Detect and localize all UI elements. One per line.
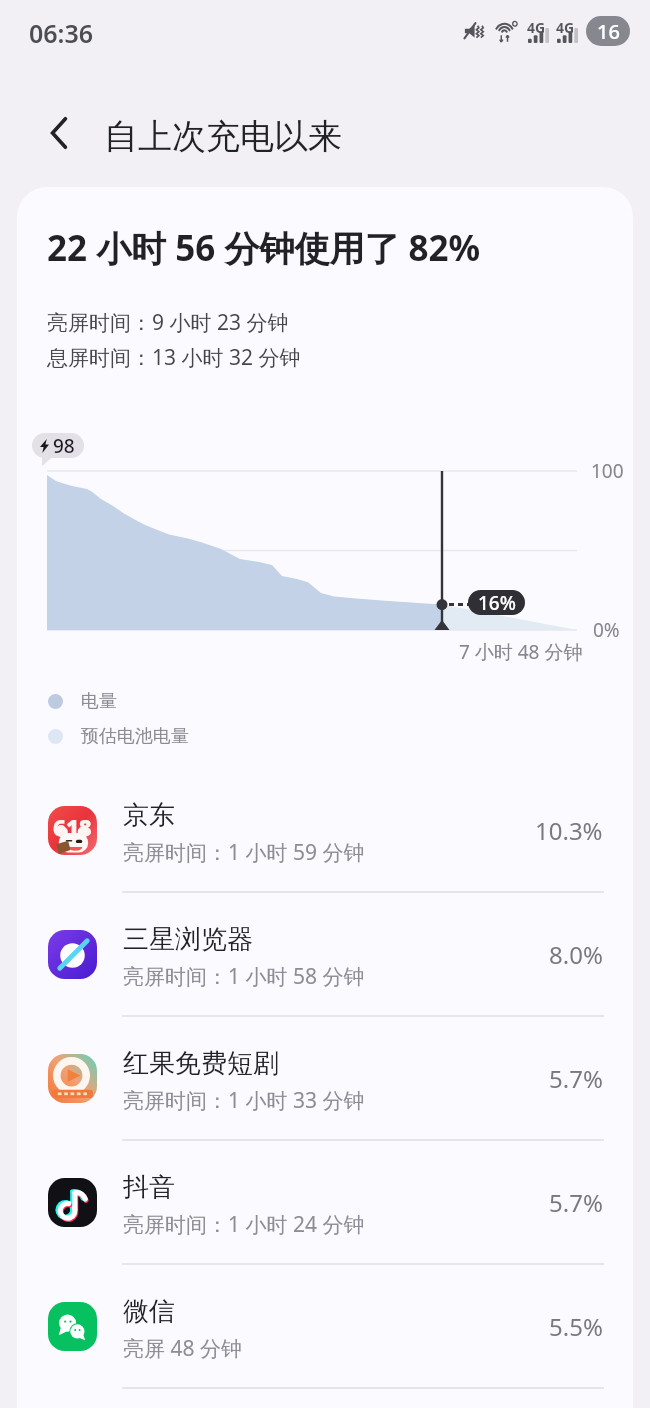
staticText: 亮屏时间：1 小时 33 分钟 bbox=[123, 1086, 365, 1115]
button[interactable]: 抖音 bbox=[17, 1141, 633, 1263]
staticText: 5.7% bbox=[549, 1186, 603, 1219]
staticText: 亮屏时间：9 小时 23 分钟 bbox=[47, 308, 289, 337]
staticText: 亮屏 48 分钟 bbox=[123, 1334, 242, 1363]
staticText: 0% bbox=[593, 617, 620, 643]
staticText: 亮屏时间：1 小时 58 分钟 bbox=[123, 962, 365, 991]
button[interactable]: 微信 bbox=[17, 1265, 633, 1387]
staticText: 10.3% bbox=[535, 814, 603, 847]
staticText: 5.5% bbox=[549, 1310, 603, 1343]
staticText: 电量 bbox=[81, 690, 117, 713]
staticText: 三星浏览器 bbox=[123, 923, 253, 956]
staticText: 16% bbox=[478, 590, 516, 615]
staticText: 8.0% bbox=[549, 938, 603, 971]
staticText: 618 bbox=[53, 812, 92, 842]
staticText: 100 bbox=[591, 458, 624, 484]
button[interactable]: 三星浏览器 bbox=[17, 893, 633, 1015]
button[interactable]: 618 bbox=[17, 769, 633, 891]
staticText: 亮屏时间：1 小时 59 分钟 bbox=[123, 838, 365, 867]
staticText: 亮屏时间：1 小时 24 分钟 bbox=[123, 1210, 365, 1239]
staticText: 5.7% bbox=[549, 1062, 603, 1095]
staticText: 4G bbox=[556, 18, 575, 37]
staticText: 7 小时 48 分钟 bbox=[459, 639, 583, 665]
staticText: 16 bbox=[597, 18, 620, 45]
staticText: 22 小时 56 分钟使用了 82% bbox=[47, 224, 481, 272]
staticText: 预估电池电量 bbox=[81, 725, 189, 748]
staticText: 06:36 bbox=[29, 16, 94, 50]
button[interactable]: Back bbox=[32, 105, 88, 161]
staticText: 98 bbox=[53, 433, 75, 458]
staticText: 微信 bbox=[123, 1295, 175, 1328]
staticText: 4G bbox=[527, 18, 546, 37]
button[interactable]: 红果免费短剧 bbox=[17, 1017, 633, 1139]
staticText: 京东 bbox=[123, 799, 175, 832]
staticText: 红果免费短剧 bbox=[123, 1047, 279, 1080]
staticText: 抖音 bbox=[123, 1171, 175, 1204]
staticText: 息屏时间：13 小时 32 分钟 bbox=[47, 343, 301, 372]
staticText: 自上次充电以来 bbox=[104, 115, 342, 158]
